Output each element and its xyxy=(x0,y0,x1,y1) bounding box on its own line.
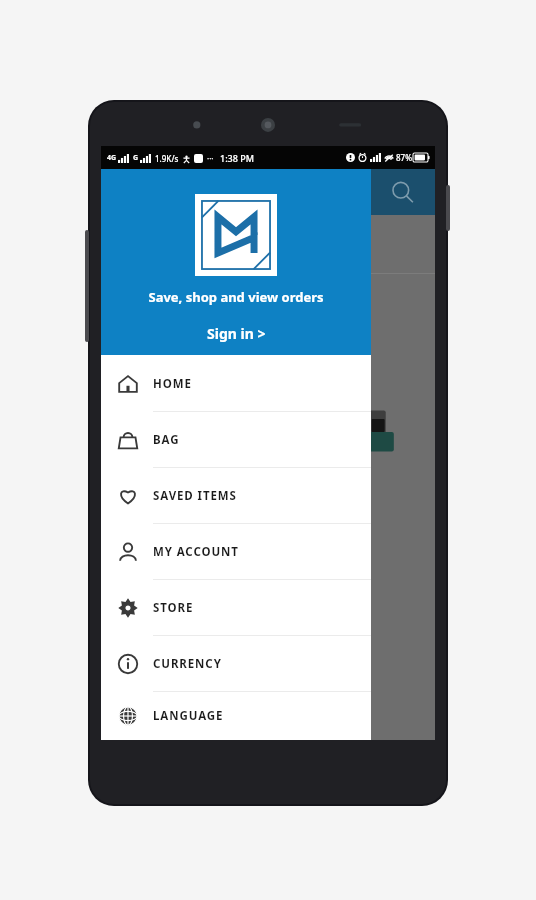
button[interactable]: Sign in > xyxy=(195,320,278,347)
staticText: LANGUAGE xyxy=(153,708,224,724)
staticText: SAVED ITEMS xyxy=(153,488,237,504)
button[interactable]: BAG xyxy=(101,412,371,467)
button[interactable]: SAVED ITEMS xyxy=(101,468,371,523)
button[interactable]: CURRENCY xyxy=(101,636,371,691)
button[interactable]: STORE xyxy=(101,580,371,635)
staticText: CURRENCY xyxy=(153,656,222,672)
staticText: 1:38 PM xyxy=(220,152,254,164)
staticText: 87% xyxy=(396,152,412,163)
button[interactable]: HOME xyxy=(101,356,371,411)
staticText: Elect xyxy=(353,463,369,473)
staticText: ··· xyxy=(207,153,214,164)
staticText: 1.9K/s xyxy=(155,153,179,164)
button[interactable]: MY ACCOUNT xyxy=(101,524,371,579)
button[interactable]: LANGUAGE xyxy=(101,692,371,740)
staticText: BAG xyxy=(153,432,180,448)
staticText: G xyxy=(133,153,139,163)
staticText: 4G xyxy=(107,153,117,163)
staticText: MY ACCOUNT xyxy=(153,544,239,560)
staticText: HOME xyxy=(153,376,192,392)
staticText: Save, shop and view orders xyxy=(148,288,324,306)
staticText: Sign in > xyxy=(207,324,266,343)
staticText: STORE xyxy=(153,600,194,616)
button[interactable]: Search xyxy=(387,177,417,207)
